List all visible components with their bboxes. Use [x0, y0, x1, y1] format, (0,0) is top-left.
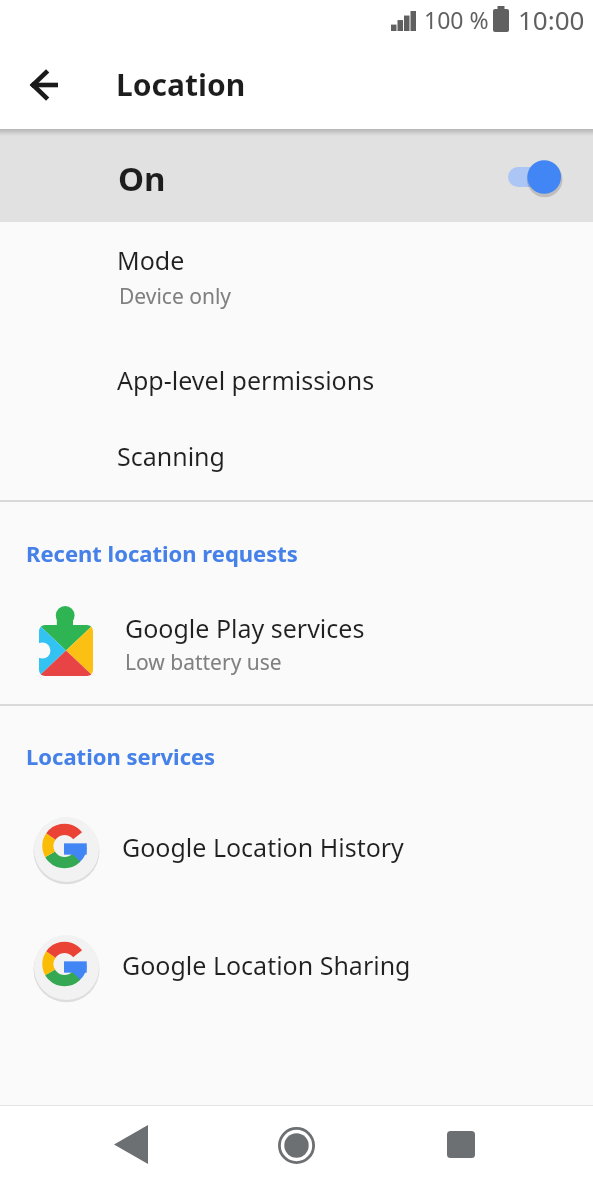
- staticText: App-level permissions: [117, 363, 375, 397]
- staticText: Scanning: [117, 439, 225, 473]
- staticText: Google Play services: [125, 611, 365, 645]
- button[interactable]: [0, 789, 593, 908]
- staticText: Mode: [117, 243, 185, 277]
- staticText: Device only: [119, 282, 232, 311]
- staticText: Google Location Sharing: [122, 948, 411, 982]
- button[interactable]: [0, 342, 593, 420]
- staticText: 100 %: [424, 4, 489, 35]
- staticText: Location: [116, 64, 246, 105]
- button[interactable]: [268, 1117, 324, 1173]
- staticText: Recent location requests: [26, 538, 298, 568]
- staticText: Low battery use: [125, 648, 282, 677]
- staticText: 10:00: [518, 2, 585, 37]
- staticText: Location services: [26, 741, 216, 771]
- button[interactable]: [501, 155, 569, 199]
- button[interactable]: [433, 1117, 489, 1173]
- button[interactable]: [103, 1117, 159, 1173]
- staticText: Google Location History: [122, 830, 404, 864]
- button[interactable]: [0, 590, 593, 703]
- button[interactable]: [0, 129, 593, 222]
- button[interactable]: [0, 222, 593, 342]
- button[interactable]: [0, 908, 593, 1027]
- button[interactable]: [18, 57, 74, 113]
- button[interactable]: [0, 420, 593, 499]
- staticText: On: [118, 156, 166, 201]
